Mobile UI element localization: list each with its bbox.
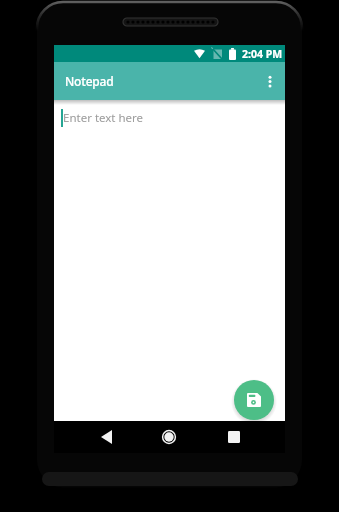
button[interactable]: Enter text here xyxy=(63,110,144,126)
button[interactable] xyxy=(234,380,274,420)
button[interactable] xyxy=(155,421,183,453)
staticText: Notepad xyxy=(65,73,114,89)
button[interactable] xyxy=(255,62,285,100)
button[interactable] xyxy=(220,421,248,453)
button[interactable] xyxy=(92,421,120,453)
staticText: 2:04 PM xyxy=(242,47,283,61)
